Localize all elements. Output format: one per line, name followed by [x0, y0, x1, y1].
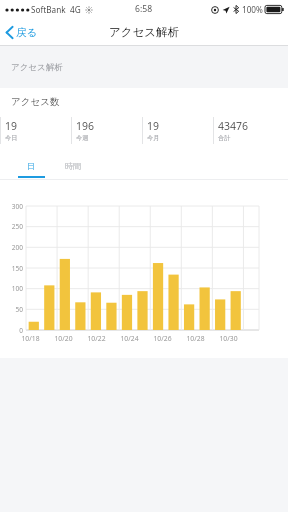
staticText: 10/22: [87, 334, 106, 343]
staticText: 日: [27, 161, 35, 171]
staticText: 100: [11, 284, 23, 293]
staticText: 43476: [218, 119, 249, 133]
button[interactable]: 日: [14, 158, 48, 178]
staticText: 6:58: [135, 3, 153, 15]
staticText: 50: [15, 305, 23, 314]
button[interactable]: 時間: [56, 158, 90, 178]
staticText: 10/28: [186, 334, 205, 343]
staticText: 4G: [70, 4, 81, 15]
staticText: 300: [11, 202, 23, 211]
staticText: 0: [19, 326, 23, 335]
staticText: 時間: [65, 161, 81, 171]
staticText: アクセス解析: [11, 62, 63, 73]
staticText: 200: [11, 243, 23, 252]
staticText: アクセス数: [11, 96, 60, 108]
staticText: 今週: [76, 134, 89, 142]
button[interactable]: 戻る: [0, 21, 46, 44]
staticText: 19: [147, 119, 160, 133]
staticText: 合計: [218, 134, 231, 142]
staticText: 150: [11, 264, 23, 273]
staticText: 10/24: [120, 334, 139, 343]
staticText: 19: [5, 119, 18, 133]
staticText: 250: [11, 222, 23, 231]
staticText: 戻る: [16, 26, 38, 39]
staticText: SoftBank: [31, 4, 66, 15]
staticText: 196: [76, 119, 95, 133]
staticText: 今日: [5, 134, 18, 142]
staticText: 100%: [242, 4, 263, 15]
staticText: 10/30: [219, 334, 238, 343]
staticText: 10/26: [153, 334, 172, 343]
staticText: 今月: [147, 134, 160, 142]
staticText: 10/20: [54, 334, 73, 343]
staticText: アクセス解析: [109, 25, 180, 39]
staticText: 10/18: [21, 334, 40, 343]
